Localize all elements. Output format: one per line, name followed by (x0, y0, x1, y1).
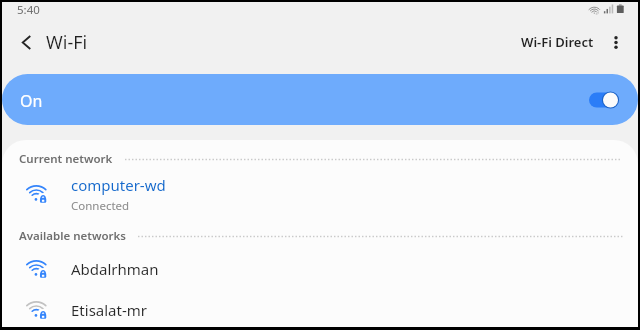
staticText: 5:40 (17, 2, 40, 18)
staticText: Wi-Fi Direct (521, 33, 594, 51)
button[interactable]: Wi-Fi Direct (513, 23, 596, 61)
staticText: On (20, 90, 43, 112)
button[interactable]: Abdalrhman (2, 249, 638, 288)
staticText: Connected (71, 198, 130, 214)
staticText: computer-wd (71, 175, 166, 195)
staticText: Wi-Fi (46, 30, 88, 55)
staticText: Current network (19, 151, 113, 167)
button[interactable]: Etisalat-mr (2, 292, 638, 327)
button[interactable]: More options (596, 22, 636, 62)
button[interactable]: On (2, 74, 638, 125)
staticText: Available networks (19, 228, 126, 244)
staticText: Abdalrhman (71, 259, 159, 279)
button[interactable]: computer-wd (2, 172, 638, 216)
staticText: Etisalat-mr (71, 300, 147, 320)
button[interactable]: Back (11, 27, 41, 57)
